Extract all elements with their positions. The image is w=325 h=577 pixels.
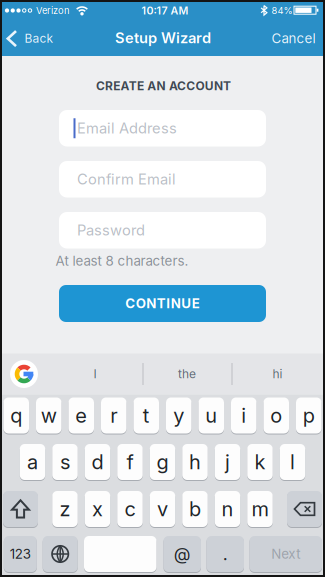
staticText: CONTINUE: [125, 296, 200, 311]
button[interactable]: t: [133, 397, 159, 433]
button[interactable]: hi: [233, 353, 321, 394]
button[interactable]: m: [247, 491, 273, 527]
staticText: q: [10, 404, 22, 427]
staticText: g: [156, 450, 168, 474]
button[interactable]: n: [215, 491, 240, 527]
staticText: e: [75, 404, 87, 427]
button[interactable]: Next keyboard: [43, 536, 78, 572]
button[interactable]: k: [247, 444, 273, 480]
staticText: x: [92, 497, 103, 521]
button[interactable]: d: [85, 444, 110, 480]
button[interactable]: y: [166, 397, 191, 433]
staticText: Verizon: [36, 5, 70, 16]
staticText: b: [189, 497, 201, 521]
button[interactable]: Shift: [3, 491, 38, 527]
button[interactable]: .: [206, 536, 244, 572]
button[interactable]: Google search: [0, 353, 48, 394]
staticText: At least 8 characters.: [55, 253, 188, 269]
button[interactable]: x: [85, 491, 110, 527]
button[interactable]: b: [182, 491, 208, 527]
button[interactable]: q: [3, 397, 29, 433]
button[interactable]: i: [231, 397, 256, 433]
button[interactable]: Next: [249, 536, 322, 572]
staticText: m: [251, 497, 268, 521]
staticText: I: [93, 367, 96, 381]
button[interactable]: Confirm Email: [59, 161, 266, 197]
staticText: v: [157, 497, 168, 521]
button[interactable]: Back: [6, 30, 53, 47]
button[interactable]: @: [163, 536, 201, 572]
button[interactable]: o: [263, 397, 289, 433]
staticText: l: [290, 450, 295, 474]
button[interactable]: Delete: [287, 491, 322, 527]
staticText: h: [189, 450, 201, 474]
staticText: c: [124, 497, 135, 521]
staticText: s: [60, 450, 70, 474]
button[interactable]: e: [68, 397, 94, 433]
staticText: 10:17 AM: [141, 4, 188, 17]
button[interactable]: l: [280, 444, 305, 480]
button[interactable]: 123: [4, 536, 37, 572]
staticText: Back: [24, 31, 53, 45]
button[interactable]: u: [198, 397, 224, 433]
staticText: t: [143, 404, 150, 427]
staticText: Password: [77, 222, 145, 239]
button[interactable]: a: [20, 444, 45, 480]
staticText: o: [270, 404, 282, 427]
button[interactable]: CONTINUE: [59, 285, 266, 322]
staticText: Next: [271, 546, 300, 562]
staticText: p: [303, 404, 315, 427]
staticText: Email Address: [77, 120, 177, 137]
button[interactable]: h: [182, 444, 208, 480]
button[interactable]: j: [215, 444, 240, 480]
staticText: f: [126, 450, 133, 474]
staticText: n: [221, 497, 233, 521]
staticText: k: [254, 450, 265, 474]
button[interactable]: g: [150, 444, 175, 480]
staticText: u: [205, 404, 217, 427]
staticText: i: [241, 404, 246, 427]
button[interactable]: s: [52, 444, 78, 480]
button[interactable]: Cancel: [271, 31, 315, 46]
staticText: hi: [272, 367, 282, 381]
button[interactable]: the: [143, 353, 231, 394]
button[interactable]: w: [36, 397, 61, 433]
staticText: the: [178, 367, 196, 381]
staticText: @: [174, 544, 191, 564]
button[interactable]: z: [52, 491, 78, 527]
button[interactable]: c: [117, 491, 143, 527]
staticText: 123: [10, 546, 31, 562]
button[interactable]: space: [84, 536, 156, 572]
staticText: Setup Wizard: [115, 29, 211, 47]
staticText: 84%: [271, 5, 292, 16]
staticText: r: [110, 404, 117, 427]
staticText: j: [225, 450, 230, 474]
staticText: Cancel: [271, 31, 315, 46]
button[interactable]: r: [101, 397, 126, 433]
staticText: Confirm Email: [77, 171, 176, 188]
button[interactable]: f: [117, 444, 143, 480]
staticText: y: [173, 404, 184, 427]
staticText: w: [41, 404, 57, 427]
staticText: a: [27, 450, 38, 474]
staticText: z: [59, 497, 70, 521]
staticText: CREATE AN ACCOUNT: [96, 79, 231, 93]
button[interactable]: Email Address: [59, 110, 266, 146]
button[interactable]: p: [296, 397, 321, 433]
staticText: .: [223, 544, 228, 564]
button[interactable]: Password: [59, 212, 266, 248]
button[interactable]: v: [150, 491, 175, 527]
button[interactable]: I: [51, 353, 139, 394]
staticText: d: [91, 450, 103, 474]
